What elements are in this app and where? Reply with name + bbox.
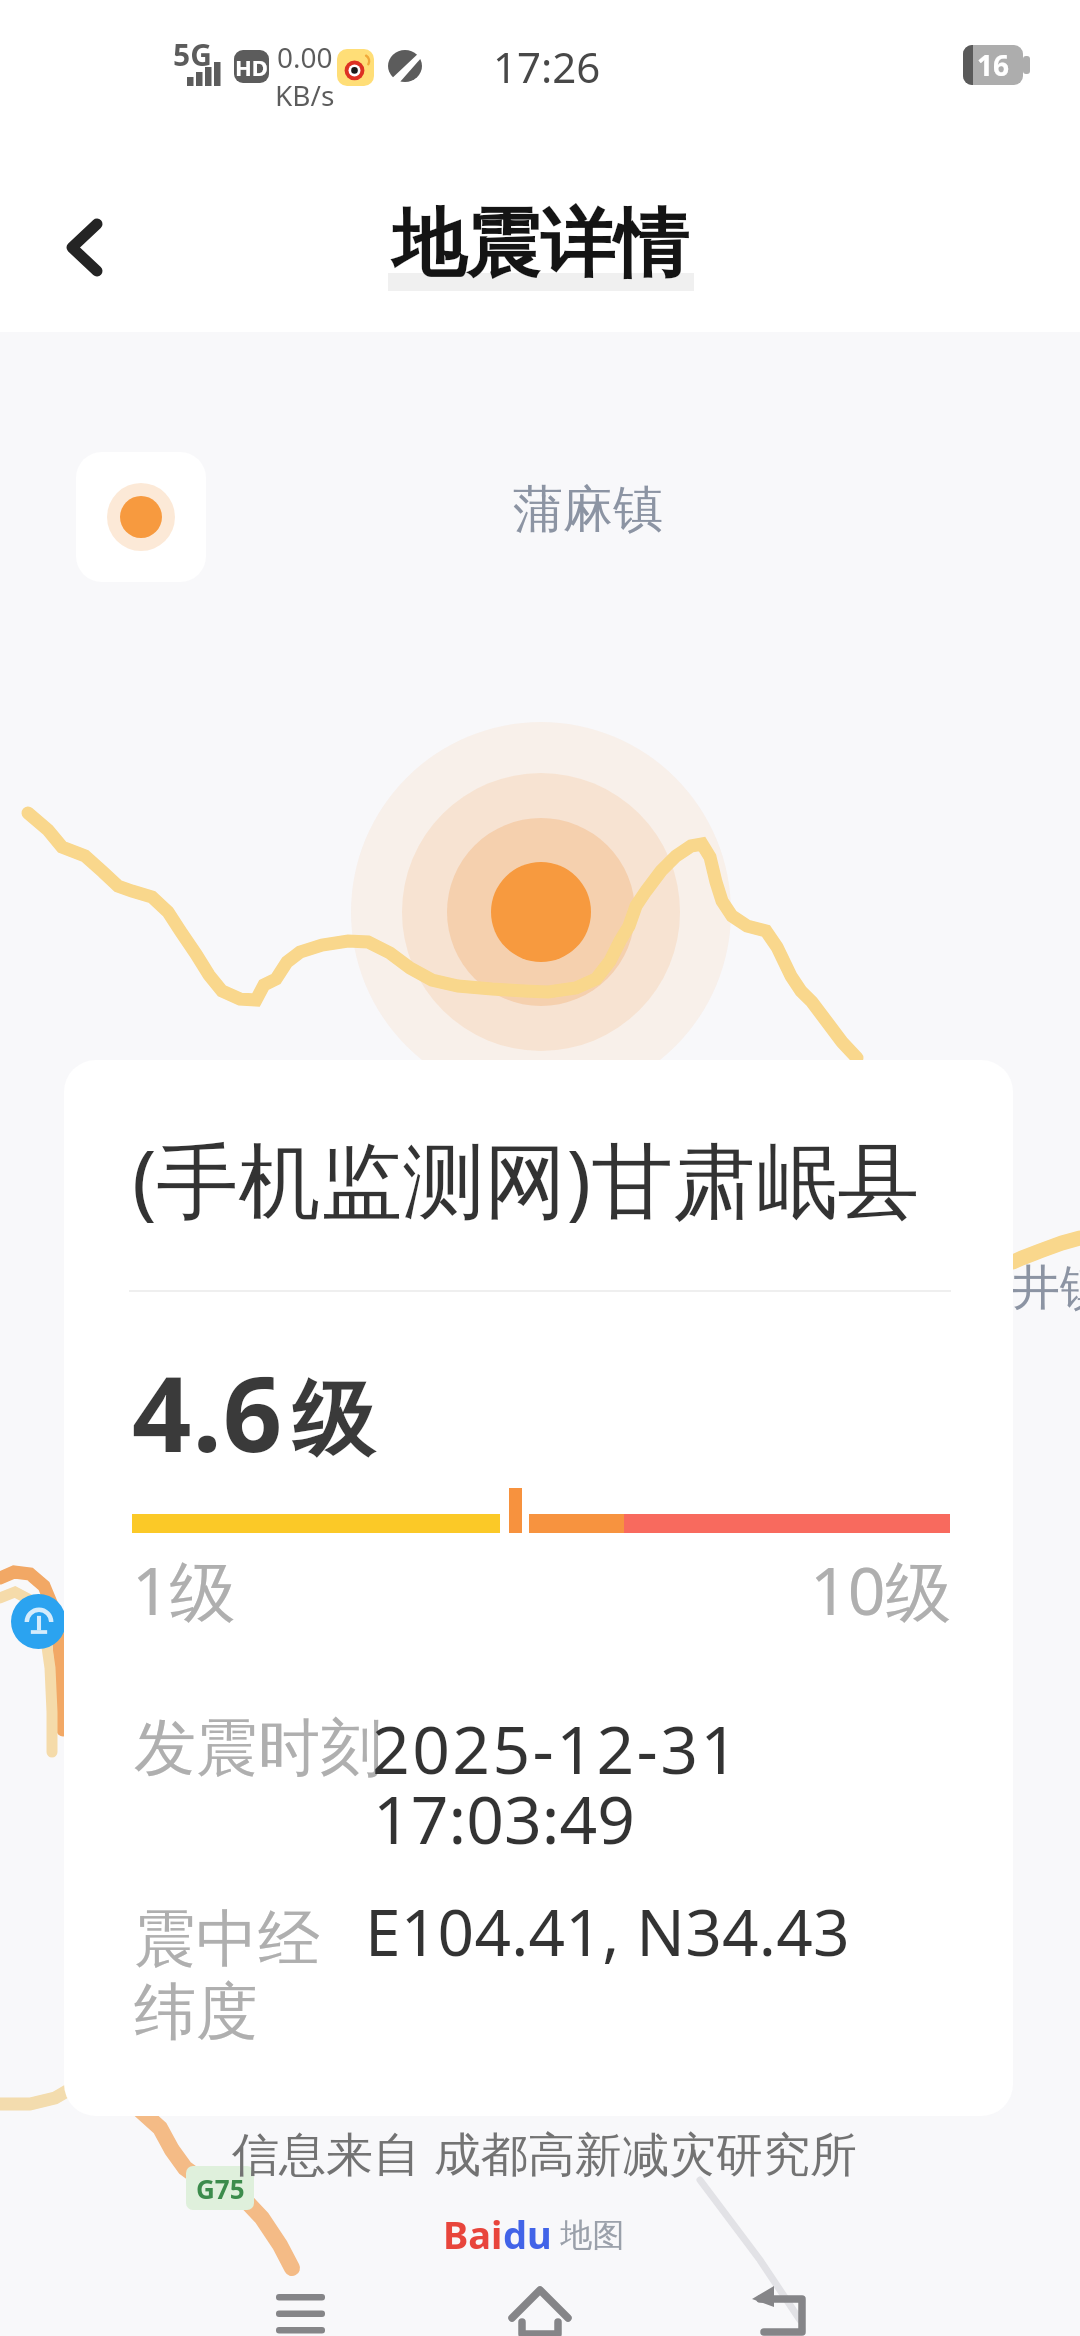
staticText: 级 (292, 1368, 374, 1471)
staticText: 信息来自 (232, 2126, 420, 2185)
staticText: 地图 (552, 2212, 625, 2256)
button[interactable]: Home (478, 2226, 602, 2336)
staticText: 17:03:49 (373, 1773, 635, 1863)
staticText: 井镇 (1012, 1258, 1080, 1318)
staticText: KB/s (275, 76, 335, 114)
staticText: 地震详情 (392, 198, 688, 291)
staticText: G75 (196, 2171, 245, 2206)
staticText: 发震时刻 (134, 1709, 382, 1787)
staticText: 10级 (810, 1544, 952, 1634)
button[interactable]: Recents (240, 2226, 362, 2336)
staticText: E104.41, N34.43 (365, 1888, 850, 1975)
staticText: 2025-12-31 (372, 1703, 741, 1793)
button[interactable]: Back (722, 2226, 844, 2336)
staticText: 蒲麻镇 (513, 478, 663, 541)
staticText: 4.6 (132, 1341, 284, 1483)
staticText: du (503, 2208, 552, 2260)
staticText: (手机监测网)甘肃岷县 (132, 1122, 920, 1234)
staticText: 成都高新减灾研究所 (434, 2126, 857, 2185)
staticText: 震中经 纬度 (134, 1900, 320, 2052)
staticText: 0.00 (277, 38, 333, 76)
button[interactable]: Back (42, 190, 156, 304)
staticText: 17:26 (493, 38, 601, 95)
staticText: 5G (173, 34, 212, 75)
staticText: Bai (443, 2208, 503, 2260)
staticText: 16 (977, 46, 1010, 84)
staticText: HD (235, 52, 268, 82)
staticText: 1级 (132, 1544, 236, 1634)
